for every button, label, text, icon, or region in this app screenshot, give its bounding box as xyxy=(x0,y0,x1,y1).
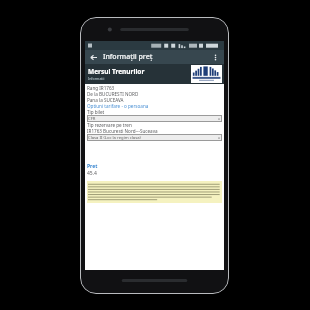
button[interactable]: Informatica Feroviara logo xyxy=(191,65,222,83)
button[interactable]: Back xyxy=(88,52,99,63)
staticText: Clasa II (Loc la regim clasa) xyxy=(88,135,217,141)
staticText: Informatii xyxy=(88,76,105,81)
staticText: De la BUCURESTI NORD xyxy=(87,91,222,97)
button[interactable]: CFR xyxy=(87,115,222,122)
staticText: Pana la SUCEAVA xyxy=(87,97,222,103)
button[interactable]: Optiuni tarifare - o persoana xyxy=(87,103,222,109)
staticText: IR1763 Bucuresti Nord---Suceava xyxy=(87,128,222,134)
staticText: Optiuni tarifare - o persoana xyxy=(87,103,222,109)
staticText: Tip rezervare pe tren xyxy=(87,122,222,128)
staticText: 45.4 xyxy=(87,170,97,177)
button[interactable]: Clasa II (Loc la regim clasa) xyxy=(87,134,222,141)
staticText: Rang IR1763 xyxy=(87,85,222,91)
staticText: Tip bilet xyxy=(87,109,222,115)
staticText: Mersul Trenurilor xyxy=(88,67,145,76)
staticText: Informații preț xyxy=(103,52,153,62)
staticText: Pret xyxy=(87,163,98,170)
button[interactable]: More options xyxy=(210,52,221,63)
staticText: CFR xyxy=(88,116,217,122)
